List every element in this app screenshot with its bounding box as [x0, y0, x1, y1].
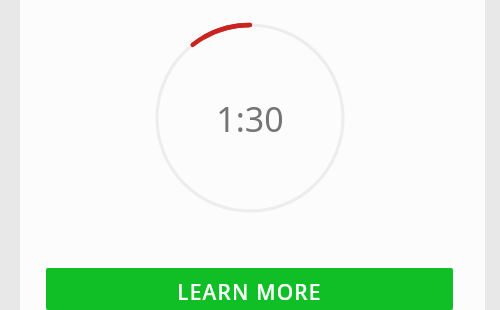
button[interactable]: LEARN MORE — [46, 268, 453, 310]
staticText: 1:30 — [216, 96, 284, 142]
staticText: LEARN MORE — [177, 278, 322, 307]
